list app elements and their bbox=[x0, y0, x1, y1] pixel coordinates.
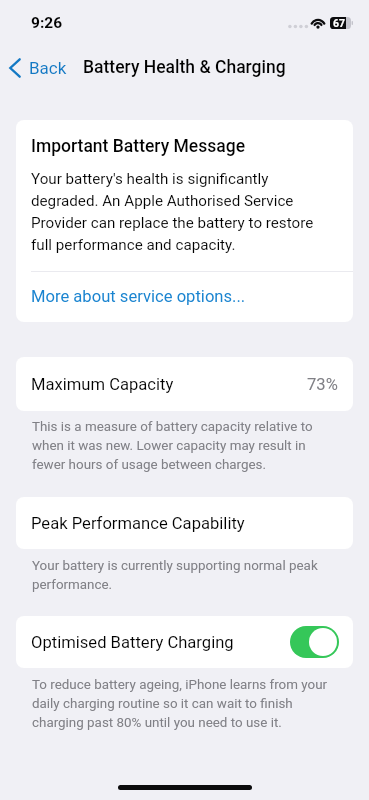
button[interactable]: Back bbox=[0, 54, 75, 82]
staticText: To reduce battery ageing, iPhone learns … bbox=[32, 677, 336, 730]
staticText: Back bbox=[29, 58, 67, 78]
staticText: This is a measure of battery capacity re… bbox=[32, 419, 336, 472]
staticText: Your battery's health is significantly d… bbox=[31, 170, 331, 254]
staticText: Maximum Capacity bbox=[31, 375, 174, 394]
button[interactable]: Optimised Battery Charging bbox=[16, 616, 353, 668]
staticText: Important Battery Message bbox=[31, 136, 246, 157]
staticText: Battery Health & Charging bbox=[83, 57, 286, 78]
staticText: 9:26 bbox=[31, 14, 63, 32]
staticText: 67 bbox=[333, 17, 346, 28]
button[interactable]: Maximum Capacity bbox=[16, 357, 353, 411]
staticText: 73% bbox=[307, 375, 338, 394]
staticText: More about service options... bbox=[31, 287, 246, 306]
button[interactable]: Optimised Battery Charging toggle bbox=[290, 626, 339, 658]
staticText: Your battery is currently supporting nor… bbox=[32, 558, 336, 592]
button[interactable]: Peak Performance Capability bbox=[16, 497, 353, 549]
button[interactable]: More about service options... bbox=[16, 272, 353, 322]
staticText: Peak Performance Capability bbox=[31, 514, 245, 533]
staticText: Optimised Battery Charging bbox=[31, 633, 234, 652]
